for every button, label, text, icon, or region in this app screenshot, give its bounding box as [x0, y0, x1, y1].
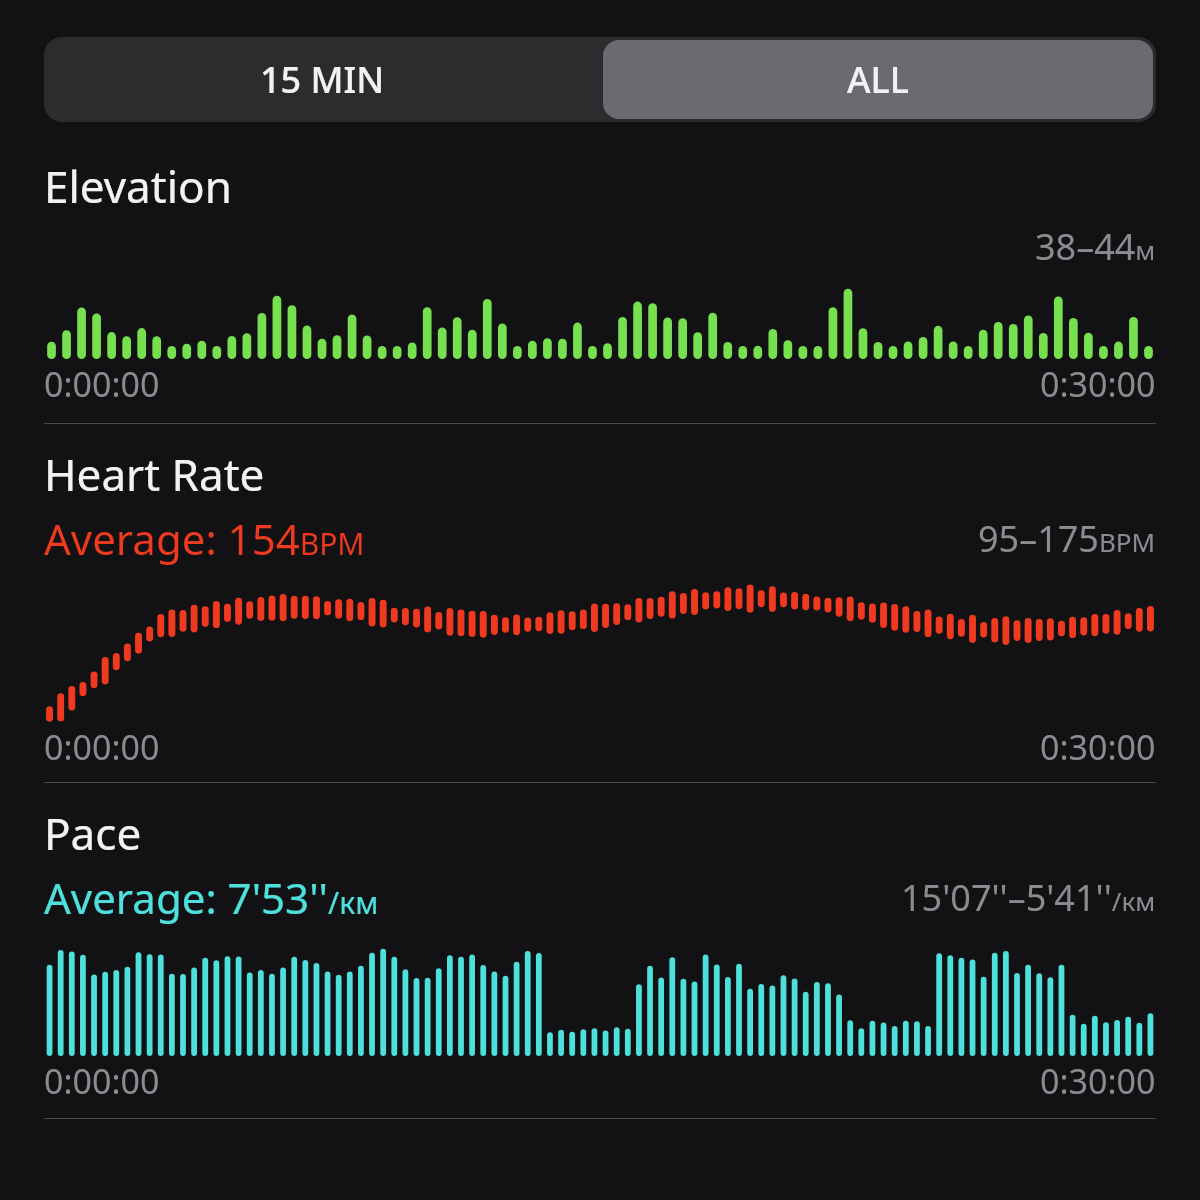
- staticText: 95–175BPM: [978, 514, 1156, 563]
- staticText: 15 MIN: [260, 55, 385, 104]
- staticText: 15'07''–5'41''/км: [901, 873, 1156, 922]
- staticText: 0:30:00: [1040, 724, 1156, 770]
- staticText: 38–44м: [1035, 222, 1156, 271]
- staticText: ALL: [847, 55, 910, 104]
- staticText: Average: 154BPM: [44, 510, 365, 567]
- staticText: 0:30:00: [1040, 361, 1156, 407]
- staticText: Pace: [44, 803, 142, 863]
- staticText: Heart Rate: [44, 444, 265, 504]
- staticText: Elevation: [44, 156, 232, 216]
- button[interactable]: 15 MIN: [44, 37, 600, 122]
- staticText: 0:00:00: [44, 361, 160, 407]
- staticText: Average: 7'53''/км: [44, 869, 379, 926]
- button[interactable]: ALL: [603, 40, 1153, 119]
- staticText: 0:30:00: [1040, 1058, 1156, 1104]
- staticText: 0:00:00: [44, 724, 160, 770]
- staticText: 0:00:00: [44, 1058, 160, 1104]
